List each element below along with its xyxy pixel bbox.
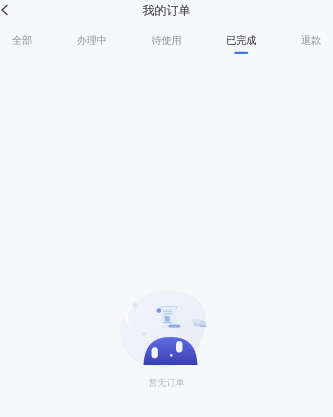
staticText: 办理中 bbox=[77, 34, 107, 47]
staticText: 待使用 bbox=[151, 34, 181, 47]
button[interactable]: 全部 bbox=[12, 34, 32, 54]
button[interactable]: 已完成 bbox=[226, 34, 256, 54]
staticText: 全部 bbox=[12, 34, 32, 47]
button[interactable]: 待使用 bbox=[151, 34, 181, 54]
button[interactable]: 退款 bbox=[301, 34, 321, 54]
button[interactable]: 办理中 bbox=[77, 34, 107, 54]
staticText: 我的订单 bbox=[142, 3, 190, 18]
staticText: 暂无订单 bbox=[148, 377, 184, 388]
staticText: 退款 bbox=[301, 34, 321, 47]
staticText: 已完成 bbox=[226, 34, 256, 47]
button[interactable]: Back bbox=[0, 0, 15, 20]
